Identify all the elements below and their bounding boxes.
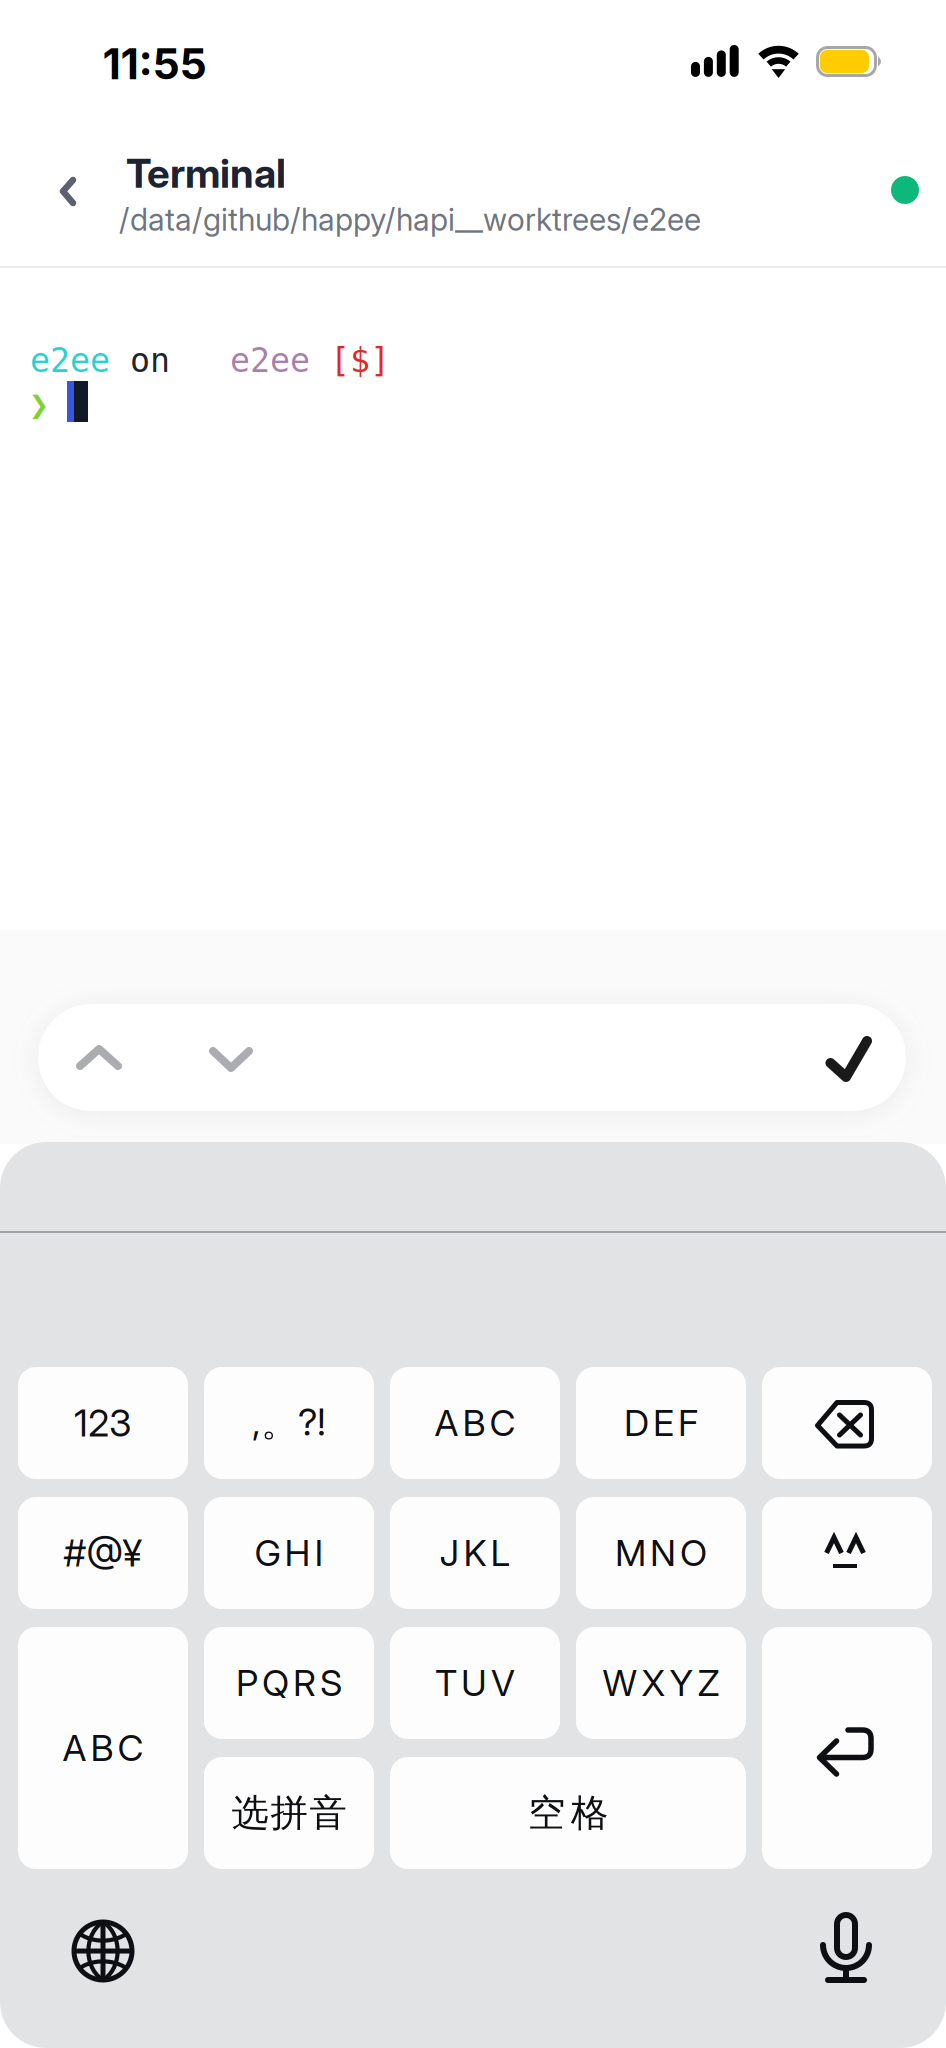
staticText: ❯ — [29, 385, 49, 424]
staticText: #@¥ — [63, 1530, 142, 1576]
button[interactable]: ,。?! — [204, 1367, 374, 1479]
button[interactable]: Previous — [60, 1030, 138, 1086]
button[interactable]: Done — [806, 1020, 886, 1094]
button[interactable]: Next — [192, 1032, 270, 1088]
button[interactable] — [762, 1627, 932, 1869]
button[interactable]: MNO — [576, 1497, 746, 1609]
staticText: WXYZ — [602, 1661, 719, 1705]
staticText: /data/github/happy/hapi__worktrees/e2ee — [119, 201, 701, 238]
button[interactable]: DEF — [576, 1367, 746, 1479]
staticText: GHI — [254, 1531, 323, 1575]
staticText: [$] — [310, 341, 390, 380]
button[interactable]: 选拼音 — [204, 1757, 374, 1869]
staticText: e2ee — [30, 341, 110, 380]
button[interactable] — [762, 1497, 932, 1609]
button[interactable] — [762, 1367, 932, 1479]
staticText: 空格 — [528, 1789, 608, 1836]
staticText: PQRS — [236, 1661, 342, 1705]
staticText: ABC — [434, 1401, 515, 1445]
button[interactable]: #@¥ — [18, 1497, 188, 1609]
button[interactable]: ABC — [390, 1367, 560, 1479]
staticText: JKL — [439, 1531, 510, 1575]
staticText: 11:55 — [102, 38, 206, 90]
staticText: ABC — [62, 1726, 143, 1770]
staticText: ,。?! — [252, 1399, 326, 1447]
button[interactable]: TUV — [390, 1627, 560, 1739]
staticText: 选拼音 — [231, 1789, 346, 1836]
button[interactable]: WXYZ — [576, 1627, 746, 1739]
staticText: e2ee — [170, 341, 310, 380]
staticText: on — [110, 341, 170, 380]
staticText: 123 — [74, 1400, 132, 1446]
staticText: Terminal — [126, 149, 286, 197]
button[interactable]: ABC — [18, 1627, 188, 1869]
button[interactable]: 空格 — [390, 1757, 746, 1869]
button[interactable]: GHI — [204, 1497, 374, 1609]
button[interactable]: JKL — [390, 1497, 560, 1609]
staticText: TUV — [435, 1661, 515, 1705]
staticText: DEF — [624, 1401, 698, 1445]
button[interactable]: 123 — [18, 1367, 188, 1479]
staticText: MNO — [615, 1531, 707, 1575]
button[interactable]: PQRS — [204, 1627, 374, 1739]
button[interactable]: Next keyboard — [68, 1916, 138, 1986]
button[interactable]: Dictate — [812, 1912, 880, 1984]
button[interactable]: Back — [22, 147, 102, 233]
